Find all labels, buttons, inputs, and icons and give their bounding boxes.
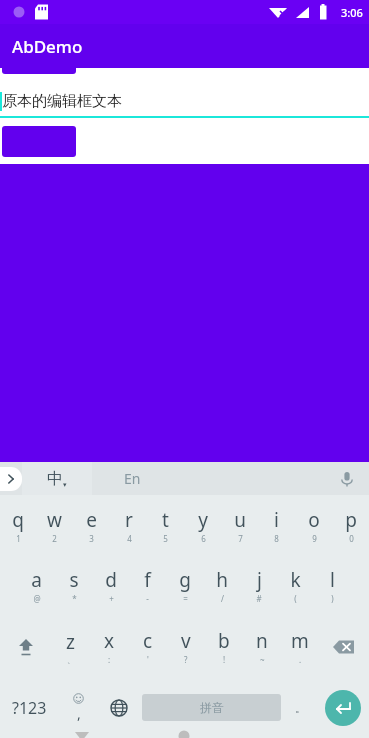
button[interactable]: p [332,495,369,555]
staticText: a [31,567,42,593]
staticText: 拼音 [200,700,224,715]
button[interactable]: Voice input [325,462,369,495]
staticText: p [345,507,357,533]
button[interactable]: z [51,616,90,677]
button[interactable]: r [110,495,147,555]
staticText: 9 [312,533,317,544]
button[interactable]: Change language [98,677,140,738]
staticText: g [179,567,191,593]
staticText: s [69,567,79,593]
staticText: 2 [52,533,57,544]
button[interactable]: 拼音 [142,694,281,721]
button[interactable]: i [258,495,295,555]
button[interactable] [2,68,76,74]
staticText: 中 [47,469,63,489]
staticText: i [274,507,279,533]
staticText: 原本的编辑框文本 [2,92,122,111]
staticText: l [330,567,335,593]
staticText: = [183,593,188,604]
staticText: 、 [67,655,75,665]
button[interactable]: h [203,555,240,616]
staticText: b [218,628,230,654]
staticText: ! [223,654,226,665]
staticText: q [12,507,24,533]
staticText: 0 [349,533,354,544]
button[interactable]: , [58,677,98,738]
button[interactable]: Expand [0,467,22,491]
button[interactable]: En [92,462,172,495]
staticText: En [124,469,141,488]
staticText: m [291,628,309,654]
button[interactable]: f [129,555,166,616]
button[interactable]: n [243,616,281,677]
staticText: r [125,507,133,533]
staticText: 4 [127,533,132,544]
staticText: z [66,629,75,655]
staticText: - [146,593,149,604]
staticText: ~ [260,654,265,665]
staticText: y [198,507,208,533]
button[interactable]: m [281,616,319,677]
button[interactable]: j [240,555,277,616]
button[interactable]: 中 [22,462,92,495]
staticText: @ [33,593,41,604]
staticText: c [143,628,153,654]
staticText: / [221,593,224,604]
staticText: 。 [295,701,306,715]
staticText: 3:06 [341,5,363,20]
staticText: + [109,593,114,604]
button[interactable]: Shift [0,616,51,677]
staticText: 3 [89,533,94,544]
button[interactable]: 原本的编辑框文本 [0,86,369,116]
staticText: x [104,628,115,654]
button[interactable]: v [167,616,205,677]
button[interactable]: Enter [317,677,369,738]
staticText: 6 [201,533,206,544]
button[interactable]: u [221,495,258,555]
staticText: h [216,567,228,593]
button[interactable]: b [205,616,243,677]
button[interactable]: a [18,555,55,616]
staticText: ( [294,593,297,604]
button[interactable]: d [92,555,129,616]
button[interactable]: y [184,495,221,555]
staticText: 1 [16,533,21,544]
staticText: AbDemo [12,35,83,58]
button[interactable]: x [90,616,129,677]
button[interactable]: w [36,495,73,555]
button[interactable]: 。 [283,677,317,738]
staticText: w [47,507,62,533]
button[interactable]: Backspace [319,616,369,677]
staticText: ' [147,654,149,665]
staticText: ? [184,654,188,665]
button[interactable]: k [277,555,314,616]
button[interactable]: e [73,495,110,555]
button[interactable]: t [147,495,184,555]
staticText: k [290,567,301,593]
staticText: ?123 [12,697,47,719]
staticText: , [77,704,81,723]
staticText: o [308,507,320,533]
staticText: n [256,628,268,654]
button[interactable]: s [55,555,92,616]
staticText: j [257,567,262,593]
button[interactable]: ?123 [0,677,58,738]
button[interactable]: q [0,495,36,555]
staticText: ▾ [63,481,67,489]
button[interactable]: c [129,616,167,677]
staticText: # [256,593,262,604]
staticText: . [299,654,302,665]
button[interactable]: g [166,555,203,616]
staticText: e [86,507,97,533]
button[interactable]: o [295,495,332,555]
staticText: : [108,654,111,665]
staticText: d [105,567,117,593]
staticText: 8 [274,533,279,544]
button[interactable]: l [314,555,351,616]
staticText: ) [331,593,334,604]
staticText: t [162,507,169,533]
staticText: 5 [163,533,168,544]
staticText: u [234,507,246,533]
button[interactable] [2,126,76,157]
staticText: v [181,628,191,654]
